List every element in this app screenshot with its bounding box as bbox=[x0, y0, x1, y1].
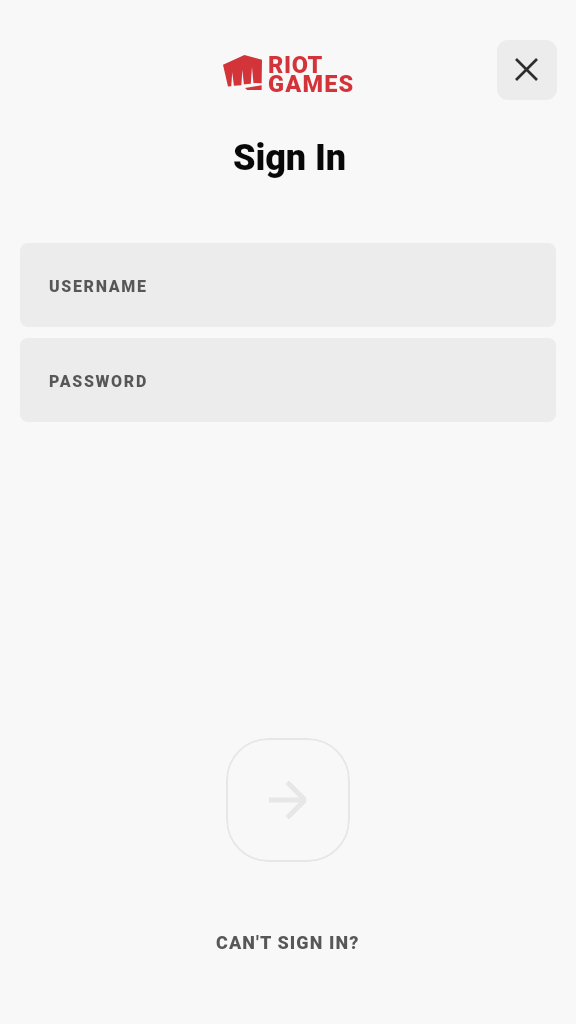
staticText: Sign In bbox=[233, 137, 346, 179]
staticText: CAN'T SIGN IN? bbox=[216, 932, 360, 953]
staticText: GAMES bbox=[268, 70, 355, 98]
button[interactable]: CAN'T SIGN IN? bbox=[204, 922, 372, 963]
button[interactable]: PASSWORD bbox=[20, 338, 556, 422]
button[interactable]: USERNAME bbox=[20, 243, 556, 327]
staticText: PASSWORD bbox=[49, 372, 148, 391]
staticText: RIOT bbox=[268, 51, 323, 79]
button[interactable]: Close bbox=[497, 40, 557, 100]
staticText: USERNAME bbox=[49, 277, 148, 296]
button[interactable]: Submit bbox=[226, 738, 350, 862]
